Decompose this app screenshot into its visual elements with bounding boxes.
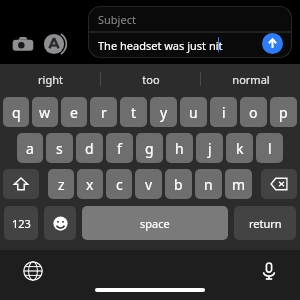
button[interactable]: n — [195, 169, 222, 199]
button[interactable]: l — [256, 133, 283, 163]
staticText: v — [145, 175, 153, 194]
button[interactable]: a — [17, 133, 43, 163]
button[interactable]: 123 — [4, 206, 38, 240]
staticText: f — [117, 139, 122, 158]
button[interactable]: return — [234, 206, 296, 240]
button[interactable]: x — [77, 169, 103, 199]
button[interactable]: space — [82, 206, 228, 240]
staticText: h — [175, 139, 184, 158]
staticText: l — [268, 139, 272, 158]
button[interactable]: g — [136, 133, 163, 163]
button[interactable]: r — [90, 97, 117, 127]
staticText: p — [279, 103, 288, 122]
staticText: y — [160, 103, 168, 122]
staticText: k — [236, 139, 244, 158]
button[interactable]: q — [3, 97, 29, 127]
staticText: c — [116, 175, 123, 194]
button[interactable]: Camera — [10, 32, 36, 58]
staticText: Subject — [98, 12, 136, 27]
staticText: o — [249, 103, 258, 122]
button[interactable]: Dictate — [256, 258, 282, 284]
button[interactable]: k — [226, 133, 253, 163]
button[interactable]: Send — [262, 33, 283, 54]
staticText: right — [38, 72, 63, 87]
staticText: a — [26, 139, 34, 158]
button[interactable]: o — [240, 97, 267, 127]
button[interactable]: Emoji — [44, 206, 76, 240]
button[interactable]: Backspace — [261, 169, 297, 199]
button[interactable]: f — [106, 133, 133, 163]
button[interactable]: Shift — [3, 169, 39, 199]
button[interactable]: u — [180, 97, 207, 127]
staticText: r — [101, 103, 107, 122]
staticText: return — [249, 216, 282, 231]
button[interactable]: w — [32, 97, 58, 127]
staticText: b — [174, 175, 183, 194]
button[interactable]: t — [120, 97, 147, 127]
button[interactable]: p — [270, 97, 297, 127]
staticText: w — [39, 103, 51, 122]
button[interactable]: too — [101, 64, 200, 94]
button[interactable]: e — [61, 97, 87, 127]
staticText: s — [56, 139, 63, 158]
staticText: 123 — [12, 216, 31, 231]
button[interactable]: normal — [201, 64, 300, 94]
staticText: n — [204, 175, 213, 194]
staticText: z — [58, 175, 65, 194]
staticText: x — [86, 175, 94, 194]
button[interactable]: j — [196, 133, 223, 163]
button[interactable]: v — [135, 169, 162, 199]
staticText: m — [232, 175, 246, 194]
staticText: normal — [232, 72, 270, 87]
staticText: e — [70, 103, 78, 122]
button[interactable]: c — [106, 169, 132, 199]
button[interactable]: y — [150, 97, 177, 127]
staticText: q — [12, 103, 21, 122]
button[interactable]: right — [0, 64, 100, 94]
staticText: g — [145, 139, 154, 158]
staticText: j — [208, 139, 212, 158]
button[interactable]: z — [48, 169, 74, 199]
button[interactable]: s — [46, 133, 73, 163]
button[interactable]: b — [165, 169, 192, 199]
staticText: The headset was just nit — [98, 38, 223, 53]
button[interactable]: Apps — [42, 32, 66, 56]
button[interactable]: h — [166, 133, 193, 163]
button[interactable]: i — [210, 97, 237, 127]
staticText: too — [142, 72, 160, 87]
staticText: d — [85, 139, 94, 158]
button[interactable]: Change keyboard — [20, 258, 46, 284]
staticText: space — [140, 216, 170, 231]
staticText: i — [222, 103, 226, 122]
button[interactable]: d — [76, 133, 103, 163]
staticText: u — [189, 103, 198, 122]
button[interactable]: Subject — [88, 6, 292, 58]
button[interactable]: m — [225, 169, 252, 199]
staticText: t — [131, 103, 137, 122]
